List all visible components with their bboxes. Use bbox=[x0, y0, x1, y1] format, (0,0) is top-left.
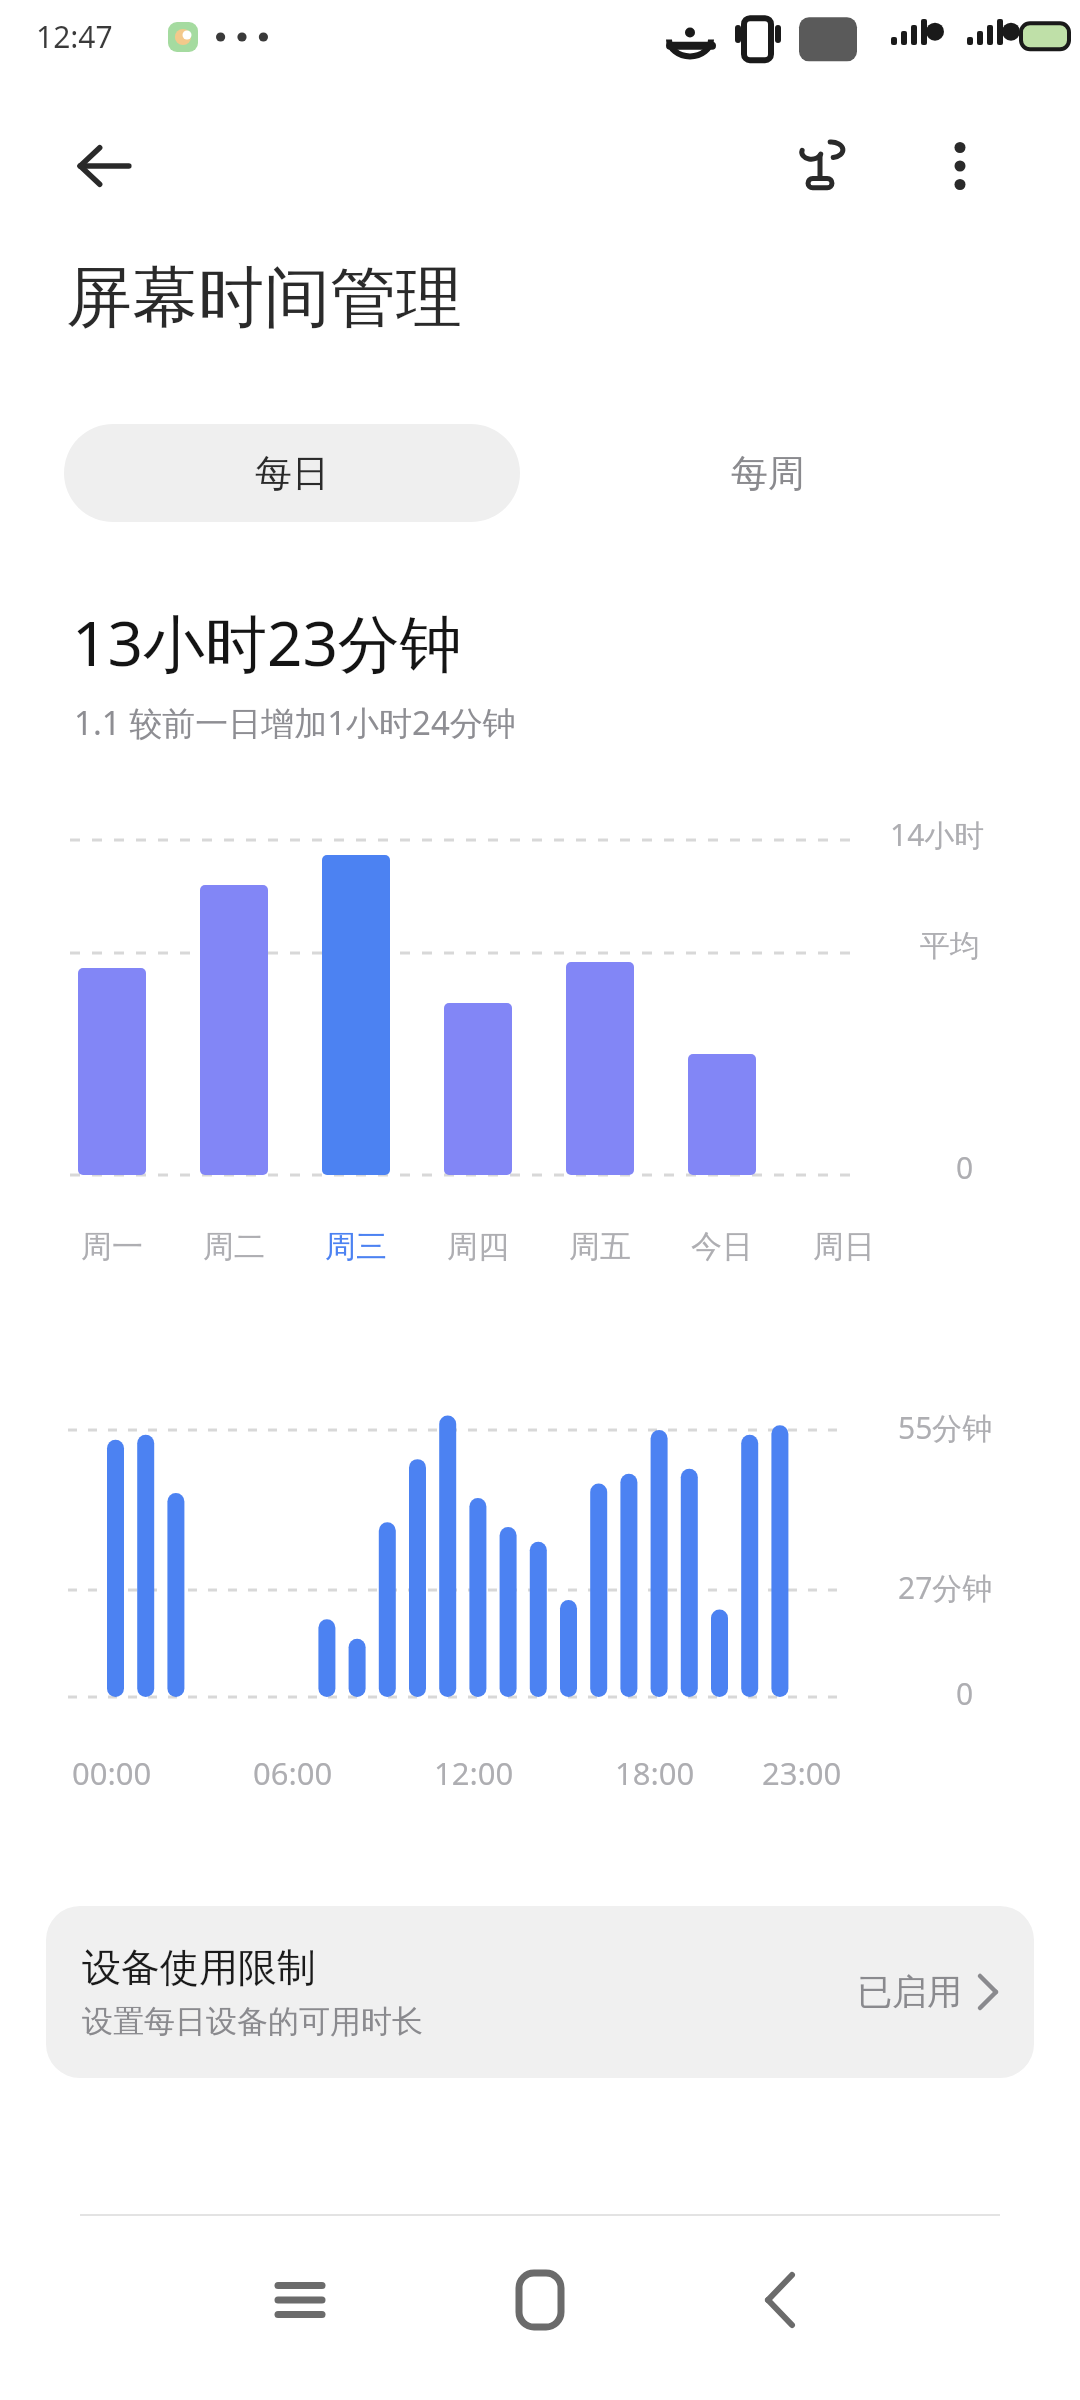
button[interactable]: Recent apps bbox=[240, 2248, 360, 2352]
staticText: 00:00 bbox=[72, 1752, 152, 1794]
staticText: 18:00 bbox=[615, 1752, 695, 1794]
button[interactable]: 每日 bbox=[64, 424, 520, 522]
staticText: 周三 bbox=[325, 1227, 387, 1266]
staticText: 周一 bbox=[81, 1227, 143, 1266]
staticText: 已启用 bbox=[857, 1970, 962, 2014]
button[interactable]: Focus mode bbox=[772, 118, 868, 214]
button[interactable]: More options bbox=[912, 118, 1008, 214]
staticText: 23:00 bbox=[762, 1752, 842, 1794]
button[interactable]: 周四 bbox=[417, 1216, 539, 1276]
staticText: 设备使用限制 bbox=[82, 1943, 316, 1992]
button[interactable]: Back bbox=[720, 2248, 840, 2352]
button[interactable]: 周二 bbox=[173, 1216, 295, 1276]
staticText: 周二 bbox=[203, 1227, 265, 1266]
button[interactable]: Back bbox=[56, 118, 152, 214]
button[interactable]: 周五 bbox=[539, 1216, 661, 1276]
staticText: 屏幕时间管理 bbox=[66, 256, 462, 339]
staticText: 13小时23分钟 bbox=[72, 600, 462, 685]
button[interactable]: 周三 bbox=[295, 1216, 417, 1276]
button[interactable]: 今日 bbox=[661, 1216, 783, 1276]
staticText: 今日 bbox=[691, 1227, 753, 1266]
staticText: 1.1 较前一日增加1小时24分钟 bbox=[74, 700, 516, 745]
staticText: 每周 bbox=[731, 450, 805, 497]
staticText: 0 bbox=[956, 1147, 974, 1188]
staticText: 设置每日设备的可用时长 bbox=[82, 2002, 423, 2041]
staticText: 14小时 bbox=[890, 814, 985, 855]
button[interactable]: Home bbox=[480, 2248, 600, 2352]
staticText: 每日 bbox=[255, 450, 329, 497]
staticText: 06:00 bbox=[253, 1752, 333, 1794]
staticText: 平均 bbox=[920, 927, 980, 965]
staticText: 12:00 bbox=[434, 1752, 514, 1794]
button[interactable]: 设备使用限制 bbox=[46, 1906, 1034, 2078]
button[interactable]: 周日 bbox=[783, 1216, 905, 1276]
staticText: 周四 bbox=[447, 1227, 509, 1266]
staticText: 27分钟 bbox=[898, 1567, 993, 1608]
button[interactable]: 周一 bbox=[51, 1216, 173, 1276]
button[interactable]: 每周 bbox=[540, 424, 996, 522]
staticText: 周日 bbox=[813, 1227, 875, 1266]
staticText: 12:47 bbox=[36, 16, 113, 57]
staticText: 周五 bbox=[569, 1227, 631, 1266]
staticText: 0 bbox=[956, 1673, 974, 1714]
staticText: 55分钟 bbox=[898, 1407, 993, 1448]
